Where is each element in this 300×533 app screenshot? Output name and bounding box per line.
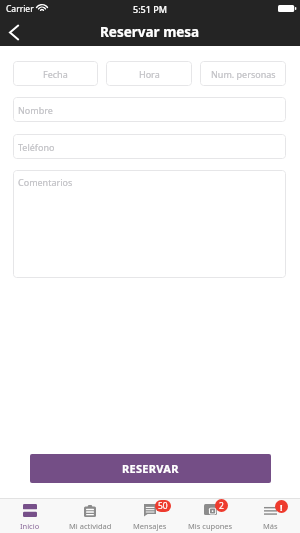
button[interactable]: Back xyxy=(0,18,28,46)
button[interactable]: 2 xyxy=(180,499,240,533)
staticText: Mis cupones xyxy=(188,521,233,531)
staticText: Nombre xyxy=(18,104,53,116)
button[interactable]: Hora xyxy=(106,61,192,86)
staticText: Teléfono xyxy=(18,141,55,153)
staticText: 2 xyxy=(219,500,224,512)
staticText: Reservar mesa xyxy=(100,23,200,41)
button[interactable]: Teléfono xyxy=(13,134,286,159)
staticText: RESERVAR xyxy=(122,461,179,476)
staticText: Más xyxy=(263,521,278,531)
button[interactable]: Inicio xyxy=(0,499,60,533)
button[interactable]: Nombre xyxy=(13,97,286,122)
staticText: Num. personas xyxy=(211,68,276,80)
button[interactable]: Fecha xyxy=(13,61,98,86)
staticText: Mensajes xyxy=(133,521,167,531)
button[interactable]: ! xyxy=(240,499,300,533)
staticText: Fecha xyxy=(43,68,68,80)
staticText: Mi actividad xyxy=(69,521,112,531)
button[interactable]: Num. personas xyxy=(200,61,286,86)
staticText: ! xyxy=(280,501,283,513)
staticText: 5:51 PM xyxy=(133,3,167,15)
button[interactable]: Mi actividad xyxy=(60,499,120,533)
staticText: 50 xyxy=(158,500,168,512)
staticText: Hora xyxy=(139,68,160,80)
button[interactable]: RESERVAR xyxy=(30,454,271,483)
staticText: Inicio xyxy=(20,521,40,531)
staticText: Carrier xyxy=(6,3,34,15)
staticText: Comentarios xyxy=(18,176,73,188)
button[interactable]: 50 xyxy=(120,499,180,533)
button[interactable]: Comentarios xyxy=(13,170,286,278)
